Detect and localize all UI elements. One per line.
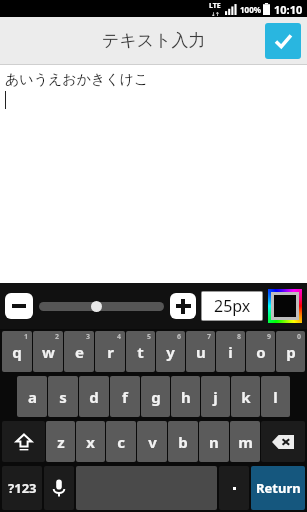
staticText: w [42,342,55,362]
staticText: 9 [267,332,272,342]
staticText: あいうえおかきくけこ [5,71,149,89]
staticText: f [122,387,128,407]
staticText: e [75,342,84,362]
staticText: 100% [240,4,261,15]
staticText: z [57,432,65,452]
button[interactable]: a [17,376,47,417]
staticText: 2 [55,332,60,342]
staticText: 6 [177,332,182,342]
button[interactable] [39,293,164,319]
button[interactable]: w [33,331,63,372]
staticText: y [166,342,175,362]
staticText: c [117,432,125,452]
button[interactable]: b [168,421,198,462]
staticText: 25px [214,295,251,317]
button[interactable]: i [216,331,245,372]
button[interactable]: Voice input [44,466,74,510]
button[interactable]: j [201,376,230,417]
staticText: Return [256,479,301,497]
button[interactable]: u [186,331,215,372]
button[interactable]: n [199,421,229,462]
staticText: 3 [86,332,91,342]
staticText: v [148,432,157,452]
button[interactable]: s [48,376,78,417]
staticText: ?123 [8,479,37,497]
staticText: 0 [297,332,302,342]
button[interactable]: f [110,376,140,417]
staticText: ↓↑ [211,11,220,17]
button[interactable]: l [261,376,290,417]
button[interactable]: Confirm [265,23,301,59]
button[interactable]: Decrease size [5,293,33,319]
button[interactable]: r [95,331,125,372]
button[interactable]: Backspace [261,421,305,462]
staticText: b [178,432,188,452]
button[interactable]: y [156,331,185,372]
button[interactable]: d [79,376,109,417]
button[interactable]: h [171,376,200,417]
staticText: 5 [147,332,152,342]
staticText: g [151,387,161,407]
button[interactable]: Shift [2,421,45,462]
staticText: r [107,342,114,362]
staticText: 10:10 [274,2,303,17]
button[interactable]: p [276,331,305,372]
staticText: h [181,387,191,407]
button[interactable]: e [64,331,94,372]
button[interactable]: ?123 [2,466,42,510]
staticText: 7 [207,332,212,342]
staticText: i [228,342,233,362]
button[interactable]: Increase size [170,293,196,319]
button[interactable]: o [246,331,275,372]
button[interactable]: g [141,376,170,417]
button[interactable]: 25px [202,292,262,320]
staticText: k [241,387,251,407]
staticText: 1 [24,332,29,342]
staticText: t [137,342,144,362]
button[interactable]: x [76,421,105,462]
button[interactable]: v [137,421,167,462]
staticText: q [12,342,22,362]
button[interactable]: q [2,331,32,372]
staticText: j [213,387,218,407]
staticText: s [59,387,67,407]
staticText: u [196,342,206,362]
button[interactable]: z [46,421,75,462]
staticText: 8 [237,332,242,342]
button[interactable]: m [230,421,260,462]
staticText: x [86,432,95,452]
staticText: LTE [209,1,221,11]
button[interactable]: t [126,331,155,372]
staticText: 4 [117,332,122,342]
button[interactable]: c [106,421,136,462]
button[interactable]: k [231,376,260,417]
staticText: o [256,342,266,362]
button[interactable] [219,466,249,510]
staticText: m [238,432,253,452]
staticText: l [273,387,278,407]
staticText: a [28,387,37,407]
staticText: p [286,342,296,362]
staticText: n [209,432,219,452]
staticText: d [89,387,99,407]
staticText: テキスト入力 [102,30,206,51]
button[interactable]: Return [251,466,305,510]
